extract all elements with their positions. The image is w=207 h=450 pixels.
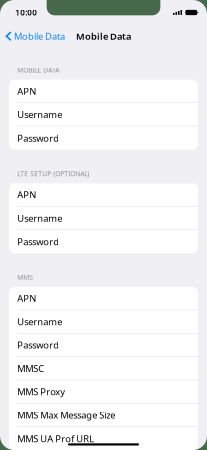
staticText: APN bbox=[17, 85, 36, 97]
staticText: MMS Max Message Size bbox=[17, 409, 115, 421]
staticText: Username bbox=[17, 212, 62, 224]
staticText: Mobile Data bbox=[76, 30, 131, 42]
staticText: MMS Proxy bbox=[17, 385, 65, 398]
staticText: Mobile Data bbox=[14, 30, 65, 42]
staticText: MMS bbox=[17, 273, 33, 282]
button[interactable]: Password bbox=[9, 230, 198, 253]
staticText: Username bbox=[17, 108, 62, 121]
button[interactable]: APN bbox=[9, 183, 198, 207]
staticText: Username bbox=[17, 315, 62, 328]
staticText: MOBILE DATA bbox=[17, 66, 59, 74]
button[interactable]: Username bbox=[9, 310, 198, 334]
staticText: APN bbox=[17, 292, 36, 304]
staticText: Password bbox=[17, 339, 59, 351]
button[interactable]: APN bbox=[9, 287, 198, 310]
staticText: Password bbox=[17, 132, 59, 144]
button[interactable]: Username bbox=[9, 207, 198, 230]
staticText: APN bbox=[17, 188, 36, 201]
staticText: 10:00 bbox=[15, 7, 37, 18]
staticText: MMS UA Prof URL bbox=[17, 432, 94, 445]
button[interactable]: APN bbox=[9, 80, 198, 103]
button[interactable]: MMS Max Message Size bbox=[9, 404, 198, 427]
button[interactable]: MMS Proxy bbox=[9, 380, 198, 404]
button[interactable]: MMSC bbox=[9, 357, 198, 380]
button[interactable]: Password bbox=[9, 334, 198, 357]
staticText: LTE SETUP (OPTIONAL) bbox=[17, 169, 89, 178]
button[interactable]: Mobile Data bbox=[0, 27, 65, 45]
button[interactable]: MMS UA Prof URL bbox=[9, 427, 198, 450]
staticText: MMSC bbox=[17, 362, 44, 374]
button[interactable]: Password bbox=[9, 126, 198, 150]
button[interactable]: Username bbox=[9, 103, 198, 126]
staticText: Password bbox=[17, 235, 59, 248]
